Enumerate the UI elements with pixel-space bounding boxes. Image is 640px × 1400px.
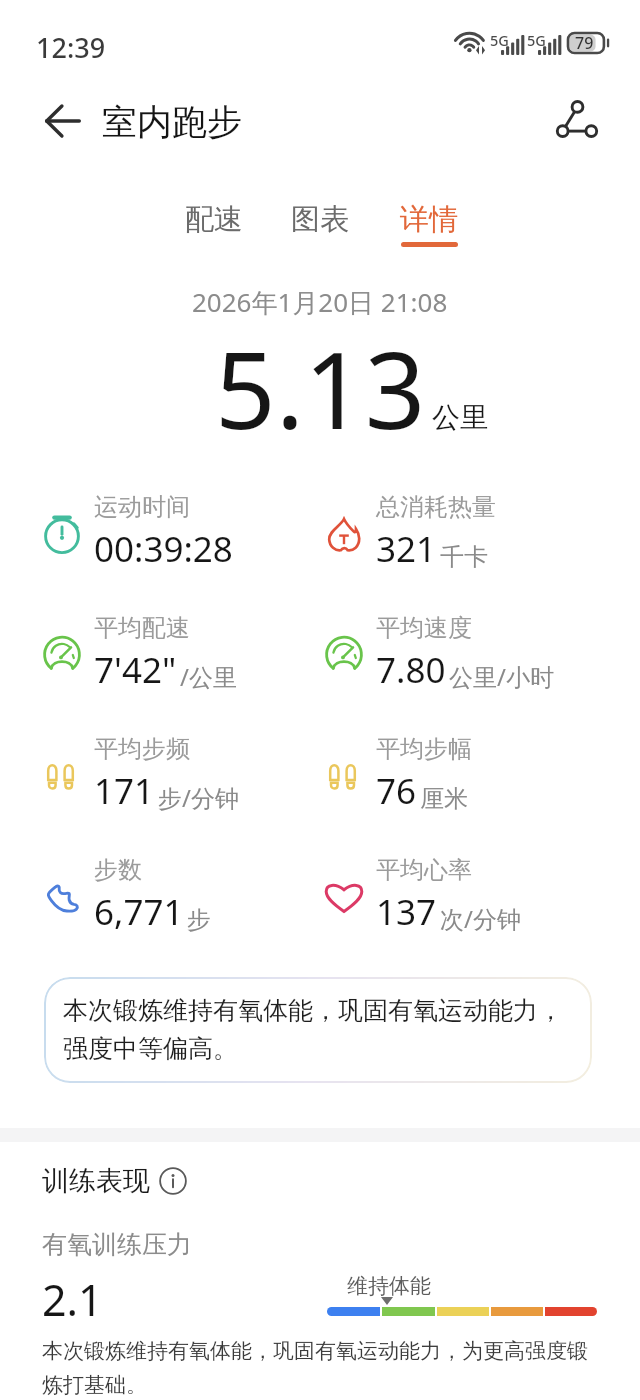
- staticText: 137: [376, 888, 437, 936]
- staticText: 平均步频: [94, 734, 190, 764]
- button[interactable]: 平均步幅: [324, 734, 472, 815]
- button[interactable]: 配速: [172, 197, 256, 251]
- button[interactable]: 图表: [278, 197, 362, 251]
- staticText: 配速: [185, 201, 243, 238]
- button[interactable]: 平均配速: [42, 613, 237, 694]
- staticText: 平均心率: [376, 855, 472, 885]
- staticText: 总消耗热量: [376, 492, 496, 522]
- button[interactable]: 运动时间: [42, 492, 233, 573]
- button[interactable]: 平均步频: [42, 734, 239, 815]
- button[interactable]: 平均速度: [324, 613, 554, 694]
- staticText: 平均步幅: [376, 734, 472, 764]
- button[interactable]: 总消耗热量: [324, 492, 496, 573]
- staticText: 维持体能: [347, 1273, 431, 1299]
- staticText: 公里/小时: [449, 660, 554, 693]
- staticText: 室内跑步: [102, 100, 242, 144]
- staticText: 321: [376, 525, 437, 573]
- button[interactable]: 平均心率: [324, 855, 521, 936]
- staticText: 步/分钟: [158, 781, 239, 814]
- button[interactable]: 本次锻炼维持有氧体能，巩固有氧运动能力，强度中等偏高。: [44, 977, 592, 1083]
- staticText: 图表: [291, 201, 349, 238]
- staticText: 171: [94, 767, 155, 815]
- staticText: /公里: [180, 660, 237, 693]
- staticText: 平均速度: [376, 613, 472, 643]
- staticText: 2026年1月20日 21:08: [192, 284, 448, 320]
- staticText: 2.1: [42, 1270, 103, 1329]
- staticText: 76: [376, 767, 417, 815]
- staticText: 5G: [527, 30, 546, 50]
- button[interactable]: Back: [35, 93, 91, 149]
- staticText: 有氧训练压力: [42, 1229, 192, 1260]
- staticText: 12:39: [36, 29, 106, 66]
- button[interactable]: Share: [546, 89, 608, 151]
- staticText: 6,771: [94, 888, 184, 936]
- staticText: 千卡: [440, 542, 488, 572]
- staticText: 平均配速: [94, 613, 190, 643]
- staticText: 训练表现: [42, 1164, 150, 1198]
- staticText: 本次锻炼维持有氧体能，巩固有氧运动能力，强度中等偏高。: [63, 995, 580, 1065]
- staticText: 7'42": [94, 646, 177, 694]
- staticText: 7.80: [376, 646, 446, 694]
- staticText: 5.13: [215, 316, 426, 460]
- button[interactable]: 步数: [42, 855, 211, 936]
- staticText: 详情: [400, 201, 458, 238]
- staticText: 步: [187, 905, 211, 935]
- staticText: 次/分钟: [440, 902, 521, 935]
- staticText: 步数: [94, 855, 142, 885]
- staticText: 00:39:28: [94, 525, 233, 573]
- staticText: 运动时间: [94, 492, 190, 522]
- staticText: 厘米: [420, 784, 468, 814]
- staticText: 本次锻炼维持有氧体能，巩固有氧运动能力，为更高强度锻炼打基础。: [42, 1338, 608, 1399]
- staticText: 公里: [432, 400, 488, 435]
- staticText: 5G: [490, 30, 509, 50]
- button[interactable]: 详情: [387, 197, 471, 251]
- staticText: 79: [575, 32, 594, 54]
